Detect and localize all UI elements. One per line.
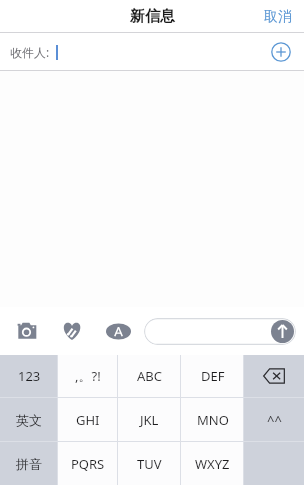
button[interactable]: Backspace [244, 355, 304, 397]
staticText: 收件人: [10, 44, 50, 60]
button[interactable]: 拼音 [0, 442, 58, 485]
staticText: PQRS [71, 455, 105, 473]
button[interactable]: 123 [0, 355, 58, 397]
staticText: TUV [137, 455, 162, 473]
button[interactable]: TUV [118, 442, 181, 485]
staticText: 英文 [16, 412, 42, 428]
staticText: 取消 [264, 8, 292, 26]
button[interactable]: Digital Touch [54, 313, 90, 349]
button[interactable]: Send [271, 320, 294, 343]
staticText: MNO [197, 411, 229, 429]
staticText: ,。?! [75, 367, 101, 385]
button[interactable]: 收件人: [0, 33, 304, 71]
staticText: WXYZ [195, 455, 230, 473]
button[interactable]: 取消 [252, 2, 304, 32]
staticText: ABC [137, 367, 162, 385]
button[interactable]: Add contact [268, 39, 294, 65]
button[interactable]: Camera [8, 313, 44, 349]
staticText: JKL [140, 411, 159, 429]
button[interactable]: JKL [118, 398, 181, 441]
staticText: 新信息 [130, 7, 175, 26]
button[interactable]: ABC [118, 355, 181, 397]
staticText: GHI [76, 411, 100, 429]
button[interactable]: ,。?! [58, 355, 118, 397]
button[interactable]: ^^ [244, 398, 304, 441]
button[interactable]: WXYZ [181, 442, 244, 485]
staticText: DEF [201, 367, 225, 385]
button[interactable]: MNO [181, 398, 244, 441]
button[interactable]: App Store [100, 313, 136, 349]
staticText: 拼音 [16, 456, 42, 472]
staticText: ^^ [267, 411, 282, 429]
staticText: 123 [18, 367, 41, 385]
button[interactable]: Send [144, 318, 296, 345]
button[interactable]: PQRS [58, 442, 118, 485]
button[interactable]: GHI [58, 398, 118, 441]
button[interactable]: DEF [181, 355, 244, 397]
button[interactable]: 英文 [0, 398, 58, 441]
